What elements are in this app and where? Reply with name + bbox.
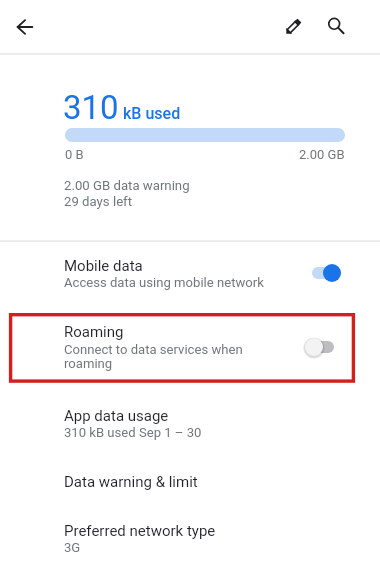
staticText: 2.00 GB [299,147,345,162]
staticText: Access data using mobile network [64,275,264,290]
staticText: Preferred network type [64,522,216,540]
staticText: 29 days left [64,194,133,209]
staticText: 310 kB used Sep 1 – 30 [64,425,202,440]
staticText: Connect to data services when roaming [64,342,243,372]
button[interactable]: Mobile data on [299,253,347,293]
staticText: 0 B [65,147,84,162]
button[interactable]: Back [5,7,45,47]
staticText: Roaming [64,323,124,341]
button[interactable]: Edit [273,7,313,47]
button[interactable]: Search [316,6,356,46]
button[interactable]: Data warning & limit [0,461,380,507]
staticText: Data warning & limit [64,473,198,491]
button[interactable]: Roaming [0,318,380,376]
staticText: 310 [63,88,119,127]
staticText: 3G [64,540,81,555]
staticText: Mobile data [64,257,143,275]
button[interactable]: App data usage [0,395,380,452]
button[interactable]: Roaming off [299,327,347,367]
button[interactable]: Mobile data [0,251,380,295]
staticText: 2.00 GB data warning [64,178,190,193]
button[interactable]: Preferred network type [0,510,380,567]
staticText: App data usage [64,407,169,425]
staticText: kB used [123,104,181,123]
